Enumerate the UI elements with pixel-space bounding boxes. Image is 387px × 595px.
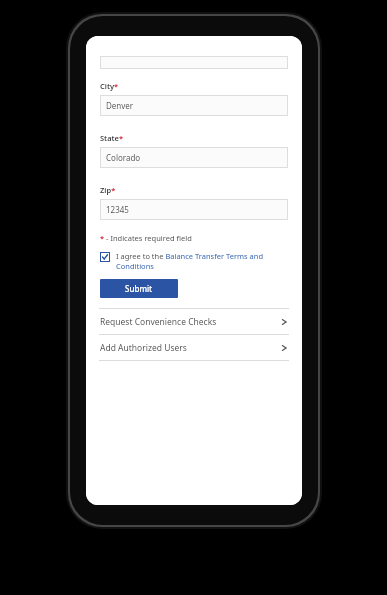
button[interactable]: Denver	[100, 95, 288, 116]
button[interactable]: 12345	[100, 199, 288, 220]
button[interactable]: Add Authorized Users	[86, 335, 302, 360]
staticText: Denver	[106, 100, 134, 111]
button[interactable]: Colorado	[100, 147, 288, 168]
staticText: Colorado	[106, 152, 141, 163]
button[interactable]: I agree checkbox	[100, 251, 288, 271]
staticText: Request Convenience Checks	[100, 316, 217, 328]
button[interactable]: Submit	[100, 279, 178, 298]
button[interactable]	[100, 56, 288, 69]
staticText: City*	[100, 81, 119, 91]
staticText: State*	[100, 133, 124, 143]
staticText: I agree to the Balance Transfer Terms an…	[116, 251, 288, 271]
other: I agree checkbox	[100, 252, 110, 262]
staticText: Submit	[125, 283, 153, 294]
staticText: Zip*	[100, 185, 116, 195]
staticText: 12345	[106, 204, 129, 215]
button[interactable]: Request Convenience Checks	[86, 309, 302, 334]
staticText: * - Indicates required field	[100, 233, 192, 243]
staticText: Add Authorized Users	[100, 342, 187, 354]
